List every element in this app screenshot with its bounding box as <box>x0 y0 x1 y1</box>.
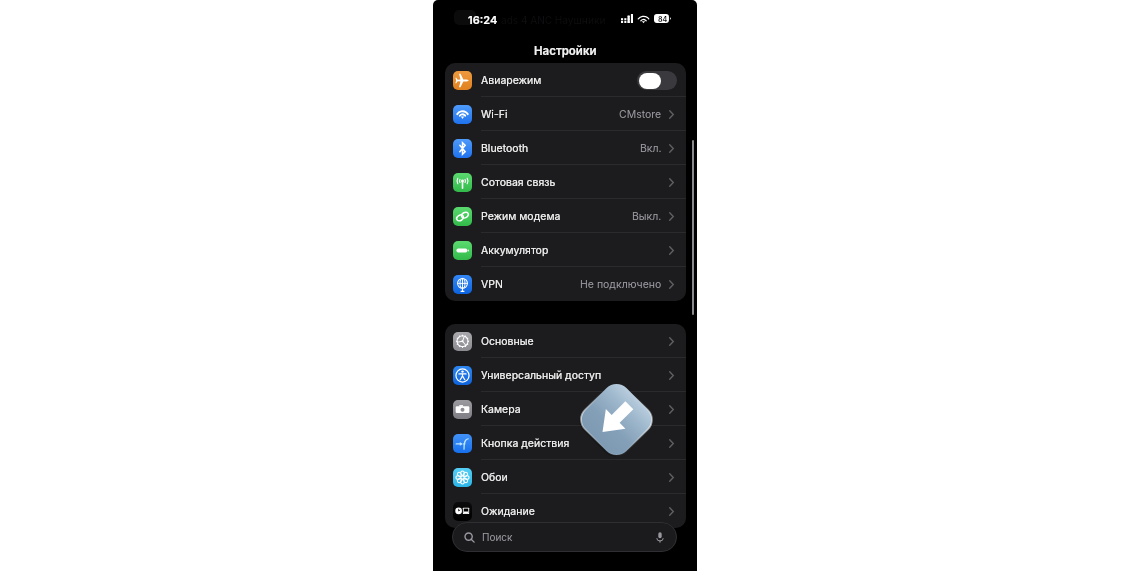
button[interactable]: Bluetooth <box>445 131 686 165</box>
button[interactable]: Авиарежим <box>637 71 677 90</box>
staticText: Камера <box>481 403 521 416</box>
staticText: Кнопка действия <box>481 437 570 450</box>
staticText: Обои <box>481 471 508 484</box>
button[interactable]: Обои <box>445 460 686 494</box>
button[interactable]: Авиарежим <box>445 63 686 97</box>
button[interactable]: Аккумулятор <box>445 233 686 267</box>
staticText: Не подключено <box>580 278 662 291</box>
button[interactable]: VPN <box>445 267 686 301</box>
button[interactable]: Кнопка действия <box>445 426 686 460</box>
button[interactable]: Поиск <box>452 522 677 552</box>
staticText: Основные <box>481 335 534 348</box>
staticText: Настройки <box>534 44 597 58</box>
staticText: Сотовая связь <box>481 176 556 189</box>
staticText: VPN <box>481 278 503 291</box>
staticText: 16:24 <box>468 13 498 26</box>
button[interactable]: Универсальный доступ <box>445 358 686 392</box>
staticText: Поиск <box>482 531 513 543</box>
staticText: ads 4 ANC Наушники <box>501 14 606 26</box>
staticText: Выкл. <box>632 210 662 223</box>
staticText: CMstore <box>619 108 662 121</box>
button[interactable]: Режим модема <box>445 199 686 233</box>
staticText: Аккумулятор <box>481 244 549 257</box>
staticText: Вкл. <box>640 142 662 155</box>
staticText: 84 <box>658 15 668 23</box>
staticText: Режим модема <box>481 210 561 223</box>
staticText: Wi-Fi <box>481 108 508 121</box>
staticText: Ожидание <box>481 505 535 518</box>
staticText: Универсальный доступ <box>481 369 602 382</box>
button[interactable]: Ожидание <box>445 494 686 528</box>
button[interactable]: Сотовая связь <box>445 165 686 199</box>
staticText: Авиарежим <box>481 74 542 87</box>
staticText: Bluetooth <box>481 142 529 155</box>
button[interactable]: Основные <box>445 324 686 358</box>
button[interactable]: Камера <box>445 392 686 426</box>
button[interactable]: Wi-Fi <box>445 97 686 131</box>
